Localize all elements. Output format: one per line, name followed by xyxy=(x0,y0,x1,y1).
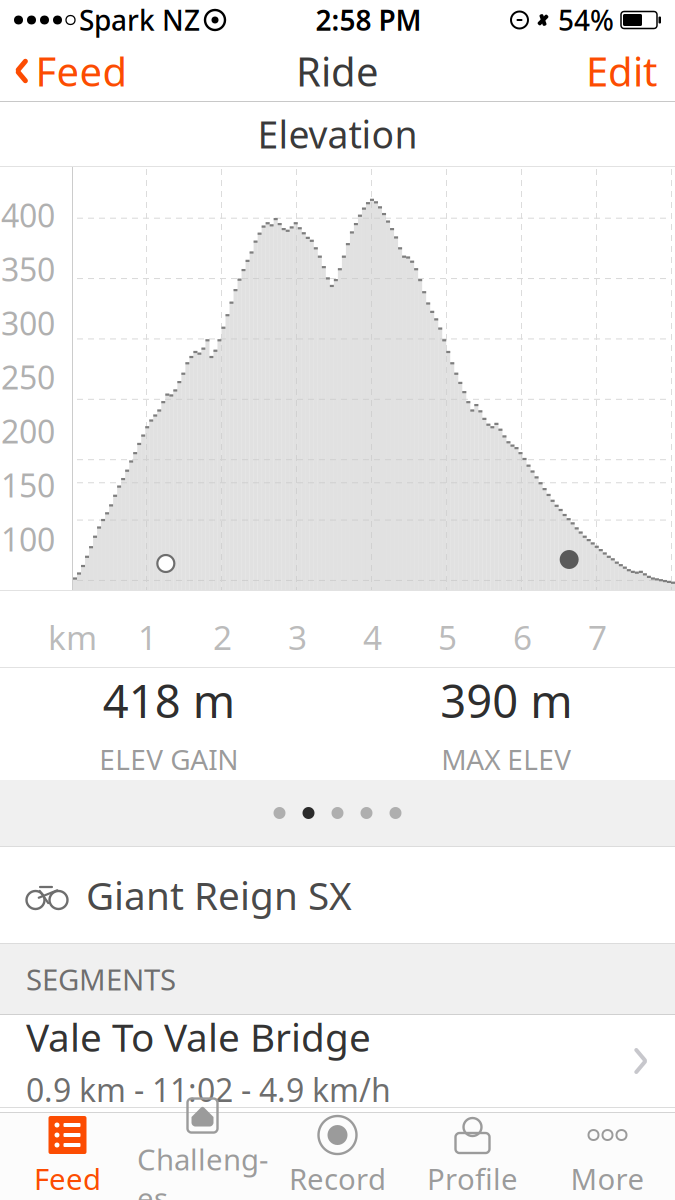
staticText: Record xyxy=(289,1159,386,1198)
staticText: ELEV GAIN xyxy=(99,740,238,778)
staticText: 200 xyxy=(1,410,55,452)
button[interactable]: Edit xyxy=(568,40,675,102)
button[interactable]: More xyxy=(540,1113,675,1199)
staticText: 390 m xyxy=(440,670,572,730)
staticText: Challenges xyxy=(137,1139,268,1200)
staticText: 400 xyxy=(1,194,55,236)
staticText: 300 xyxy=(1,302,55,344)
staticText: Elevation xyxy=(257,109,417,159)
staticText: MAX ELEV xyxy=(441,740,571,778)
staticText: Ride xyxy=(296,44,379,97)
button[interactable]: Challenges xyxy=(135,1113,270,1199)
staticText: 418 m xyxy=(103,670,235,730)
staticText: 54% xyxy=(558,1,614,39)
staticText: 100 xyxy=(1,518,55,560)
staticText: 2:58 PM xyxy=(315,1,421,39)
staticText: Profile xyxy=(427,1159,518,1198)
staticText: 4 xyxy=(363,615,382,659)
staticText: 3 xyxy=(288,615,307,659)
staticText: 0.9 km - 11:02 - 4.9 km/h xyxy=(26,1068,391,1111)
staticText: 150 xyxy=(1,464,55,506)
staticText: 5 xyxy=(438,615,457,659)
staticText: Spark NZ xyxy=(79,1,200,39)
staticText: 250 xyxy=(1,356,55,398)
staticText: 7 xyxy=(588,615,607,659)
staticText: Vale To Vale Bridge xyxy=(26,1011,371,1062)
staticText: Giant Reign SX xyxy=(86,869,352,921)
staticText: Feed xyxy=(34,1159,101,1198)
staticText: Edit xyxy=(586,44,657,97)
button[interactable]: Vale To Vale Bridge xyxy=(0,1015,675,1107)
staticText: km xyxy=(48,615,97,659)
staticText: Feed xyxy=(36,44,128,97)
button[interactable]: Feed xyxy=(0,40,142,102)
button[interactable]: Profile xyxy=(405,1113,540,1199)
staticText: More xyxy=(570,1159,644,1198)
staticText: 1 xyxy=(138,615,157,659)
staticText: 6 xyxy=(513,615,532,659)
button[interactable]: Giant Reign SX xyxy=(0,847,675,943)
button[interactable]: Feed xyxy=(0,1113,135,1199)
staticText: 350 xyxy=(1,248,55,290)
staticText: 2 xyxy=(213,615,232,659)
button[interactable]: Record xyxy=(270,1113,405,1199)
staticText: SEGMENTS xyxy=(26,959,176,998)
